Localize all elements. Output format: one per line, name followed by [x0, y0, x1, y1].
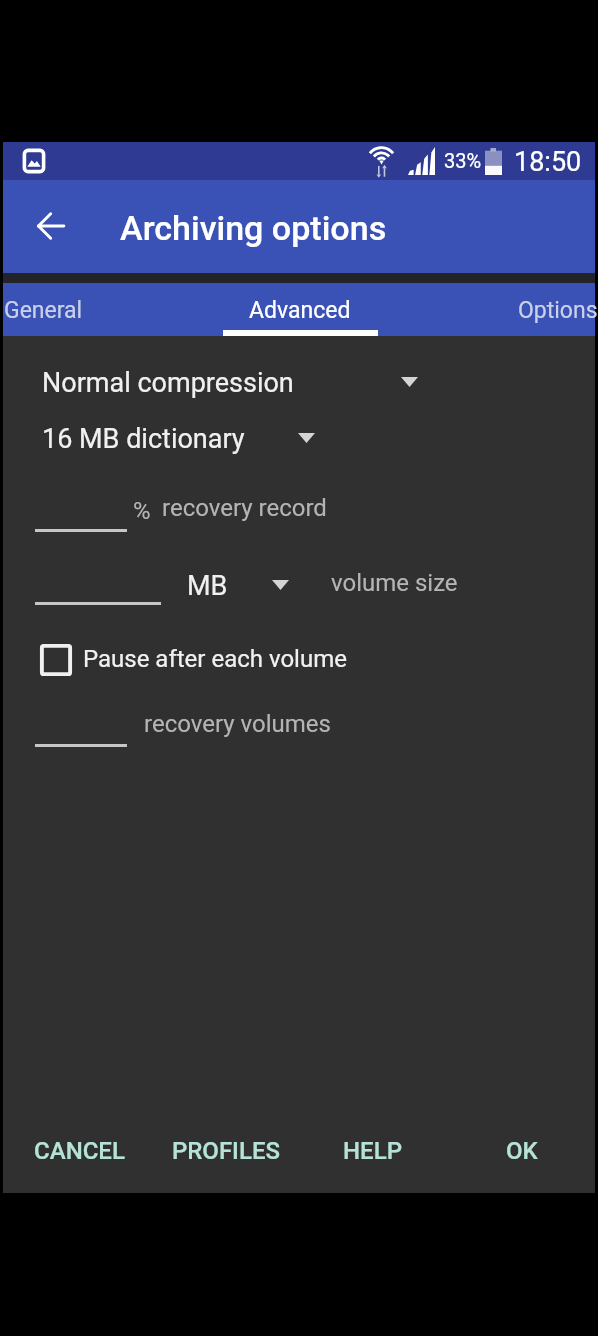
button[interactable]: HELP: [329, 1122, 416, 1180]
button[interactable]: Numeric input: [35, 710, 127, 747]
button[interactable]: Navigate back: [22, 197, 80, 255]
button[interactable]: Numeric input: [35, 494, 127, 532]
staticText: General: [4, 297, 83, 324]
button[interactable]: 16 MB dictionary: [42, 416, 323, 462]
button[interactable]: General: [0, 283, 171, 336]
staticText: Pause after each volume: [83, 645, 347, 673]
staticText: Archiving options: [120, 208, 387, 248]
staticText: volume size: [331, 569, 458, 597]
other: Screenshot notification: [22, 148, 46, 174]
staticText: recovery volumes: [144, 710, 331, 738]
button[interactable]: Advanced: [172, 283, 428, 336]
staticText: Options: [518, 297, 598, 324]
staticText: 18:50: [514, 146, 582, 178]
button[interactable]: Numeric input: [35, 566, 161, 605]
staticText: OK: [506, 1137, 538, 1165]
staticText: MB: [187, 570, 228, 602]
staticText: Advanced: [249, 297, 351, 324]
button[interactable]: CANCEL: [20, 1122, 139, 1180]
button[interactable]: Pause after each volume: [37, 639, 357, 679]
staticText: %: [133, 497, 151, 525]
button[interactable]: OK: [492, 1122, 552, 1180]
staticText: Normal compression: [42, 367, 294, 399]
button[interactable]: Options: [430, 283, 598, 336]
button[interactable]: Normal compression: [42, 360, 426, 406]
staticText: 33%: [444, 149, 482, 172]
staticText: PROFILES: [172, 1137, 280, 1165]
button[interactable]: MB: [187, 563, 297, 609]
staticText: HELP: [343, 1137, 402, 1165]
staticText: CANCEL: [34, 1137, 125, 1165]
staticText: recovery record: [162, 494, 327, 522]
staticText: 16 MB dictionary: [42, 423, 245, 455]
button[interactable]: PROFILES: [158, 1122, 294, 1180]
